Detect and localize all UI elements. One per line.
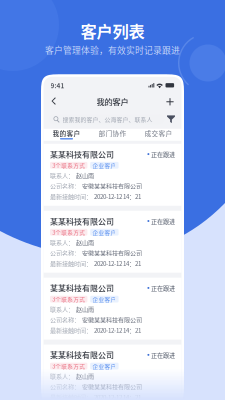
button[interactable]: 返回 (47, 95, 62, 109)
staticText: 正在跟进 (151, 283, 175, 292)
staticText: 2020-12-12 14：21 (94, 393, 141, 400)
staticText: 企业客户 (92, 295, 116, 303)
staticText: 公司名称： (50, 315, 80, 324)
staticText: 客户列表 (80, 19, 144, 43)
staticText: 正在跟进 (151, 217, 175, 225)
staticText: 最新接触时间： (50, 192, 92, 201)
staticText: 3个联系方式 (52, 362, 85, 370)
staticText: 某某科技有限公司 (50, 282, 114, 294)
staticText: 最新接触时间： (50, 259, 92, 268)
staticText: 3个联系方式 (52, 228, 85, 236)
staticText: 安徽某某科技有限公司 (82, 382, 142, 391)
staticText: 联系人： (50, 238, 74, 247)
staticText: 公司名称： (50, 382, 80, 391)
staticText: 公司名称： (50, 248, 80, 257)
button[interactable]: 搜索我的客户、公海客户、联系人 (48, 114, 164, 124)
staticText: 某某科技有限公司 (50, 148, 114, 160)
button[interactable]: 我的客户 (43, 129, 89, 141)
staticText: 某某科技有限公司 (50, 349, 114, 361)
staticText: 安徽某某科技有限公司 (82, 315, 142, 324)
staticText: 联系人： (50, 372, 74, 381)
staticText: 2020-12-12 14：21 (94, 259, 141, 268)
staticText: 2020-12-12 14：21 (94, 326, 141, 335)
staticText: 最新接触时间： (50, 326, 92, 335)
staticText: 企业客户 (92, 362, 116, 370)
staticText: 搜索我的客户、公海客户、联系人 (62, 115, 152, 123)
button[interactable]: 成交客户 (135, 129, 181, 141)
button[interactable]: 某某科技有限公司 (43, 345, 181, 400)
staticText: 赵山雨 (76, 171, 94, 180)
button[interactable]: 筛选 (164, 113, 177, 125)
staticText: 9:41 (50, 80, 64, 90)
button[interactable]: 某某科技有限公司 (43, 278, 181, 339)
button[interactable]: 部门协作 (89, 129, 135, 141)
staticText: 联系人： (50, 305, 74, 314)
staticText: 部门协作 (98, 128, 126, 138)
staticText: 赵山雨 (76, 305, 94, 314)
staticText: 3个联系方式 (52, 161, 85, 169)
staticText: 安徽某某科技有限公司 (82, 248, 142, 257)
staticText: 安徽某某科技有限公司 (82, 181, 142, 190)
staticText: 企业客户 (92, 161, 116, 169)
staticText: 企业客户 (92, 228, 116, 236)
staticText: 成交客户 (144, 128, 172, 138)
staticText: 公司名称： (50, 181, 80, 190)
staticText: 3个联系方式 (52, 295, 85, 303)
staticText: 赵山雨 (76, 238, 94, 247)
staticText: 某某科技有限公司 (50, 215, 114, 227)
button[interactable]: 某某科技有限公司 (43, 144, 181, 206)
staticText: 联系人： (50, 171, 74, 180)
button[interactable]: 新增客户 (162, 95, 177, 109)
button[interactable]: 某某科技有限公司 (43, 211, 181, 273)
staticText: 我的客户 (96, 96, 128, 108)
staticText: 2020-12-12 14：21 (94, 192, 141, 201)
staticText: 赵山雨 (76, 372, 94, 381)
staticText: 客户管理体验，有效实时记录跟进 (45, 44, 180, 56)
staticText: 正在跟进 (151, 150, 175, 158)
staticText: 正在跟进 (151, 350, 175, 359)
staticText: 我的客户 (52, 128, 80, 138)
